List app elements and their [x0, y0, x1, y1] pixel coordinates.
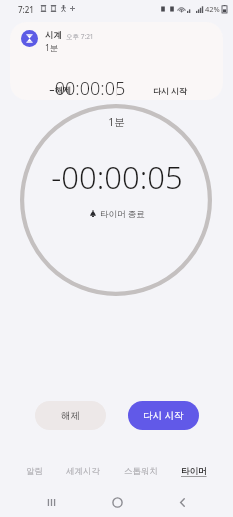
- button[interactable]: 해제: [10, 80, 116, 100]
- staticText: 1분: [108, 115, 125, 129]
- staticText: -00:00:05: [51, 156, 183, 198]
- staticText: 오후 7:21: [66, 32, 94, 41]
- staticText: 타이머: [181, 466, 207, 477]
- button[interactable]: 해제: [35, 401, 106, 430]
- staticText: 시계: [45, 30, 62, 41]
- staticText: 다시 시작: [153, 85, 188, 96]
- button[interactable]: 다시 시작: [128, 401, 199, 430]
- staticText: 다시 시작: [143, 409, 184, 422]
- staticText: 세계시각: [66, 466, 100, 477]
- button[interactable]: Back: [167, 487, 197, 517]
- staticText: 7:21: [18, 4, 34, 15]
- button[interactable]: 다시 시작: [117, 80, 223, 100]
- staticText: 해제: [61, 410, 80, 422]
- staticText: 스톱워치: [124, 466, 158, 477]
- staticText: 해제: [55, 85, 71, 95]
- button[interactable]: 스톱워치: [120, 463, 162, 480]
- button[interactable]: Recent apps: [36, 487, 66, 517]
- staticText: 타이머 종료: [100, 208, 145, 220]
- button[interactable]: 세계시각: [62, 463, 104, 480]
- button[interactable]: 시계: [10, 22, 223, 100]
- button[interactable]: 타이머: [177, 463, 211, 480]
- staticText: -00:00:05: [49, 76, 126, 100]
- button[interactable]: Home: [102, 487, 132, 517]
- staticText: 1분: [45, 42, 59, 54]
- staticText: 알림: [26, 466, 43, 477]
- staticText: 42%: [205, 4, 220, 14]
- button[interactable]: 알림: [22, 463, 47, 480]
